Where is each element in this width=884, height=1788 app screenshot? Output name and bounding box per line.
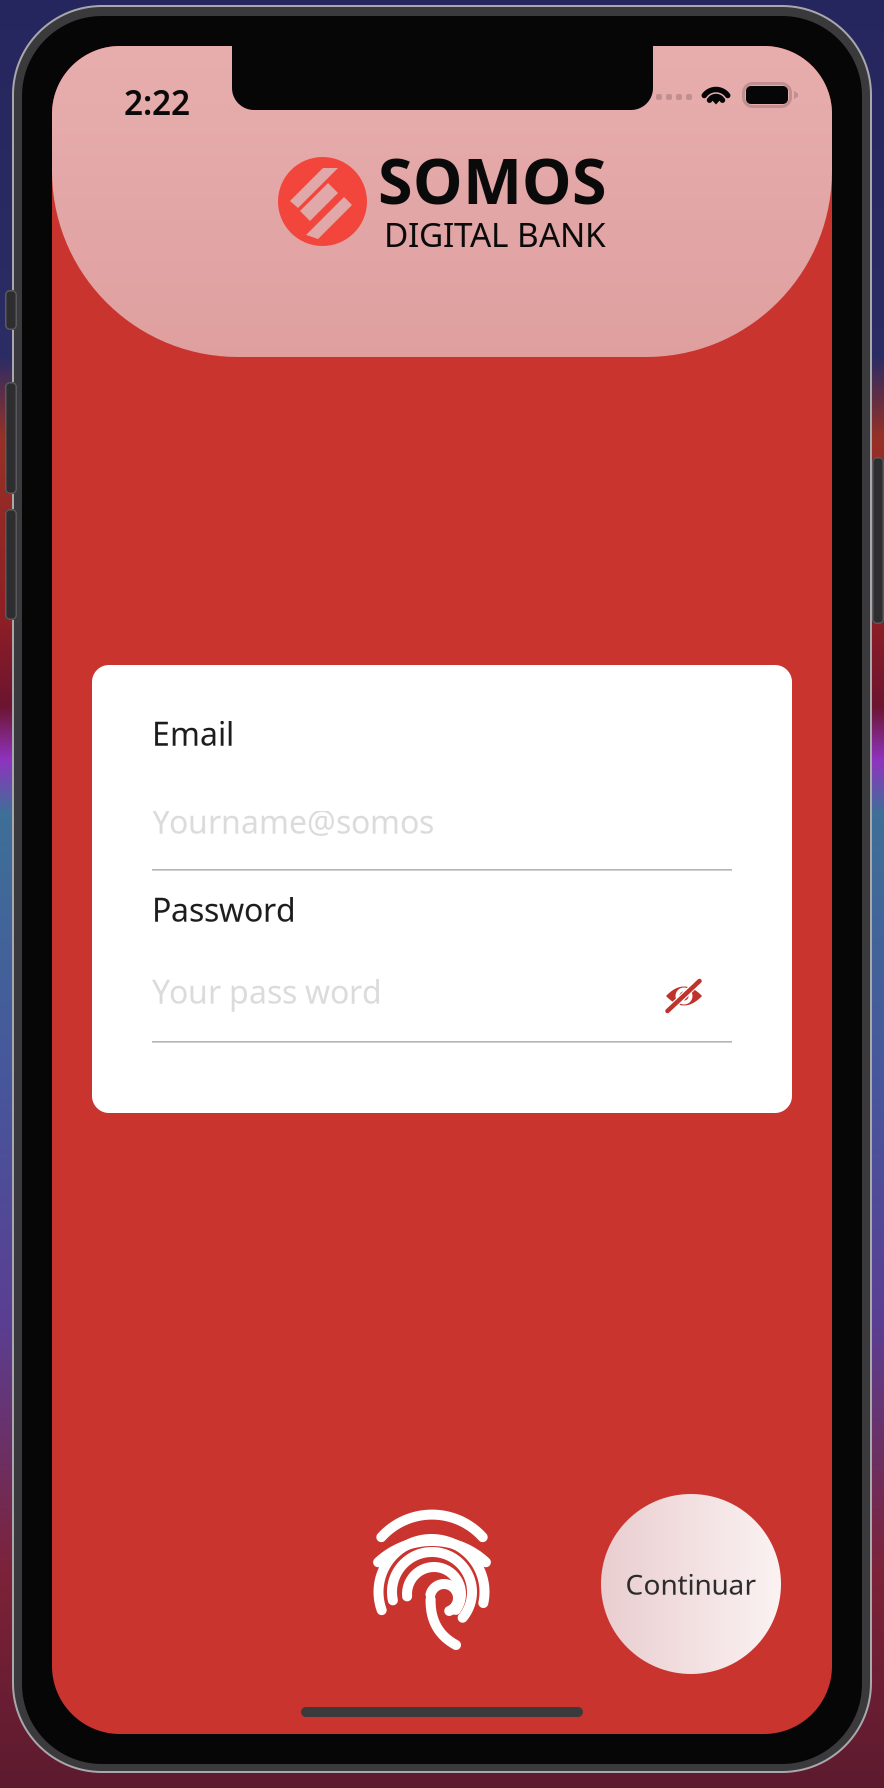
staticText: 2:22 [124,80,190,124]
staticText: Continuar [625,1565,756,1603]
button[interactable]: Sign in with fingerprint [352,1492,514,1676]
button[interactable]: Continuar [601,1494,781,1674]
staticText: Password [152,888,296,930]
staticText: Email [152,712,234,754]
staticText: Yourname@somos [152,800,434,842]
staticText: Your pass word [152,970,382,1012]
staticText: SOMOS [378,138,607,221]
button[interactable]: Show password [652,968,716,1026]
staticText: DIGITAL BANK [384,212,606,256]
